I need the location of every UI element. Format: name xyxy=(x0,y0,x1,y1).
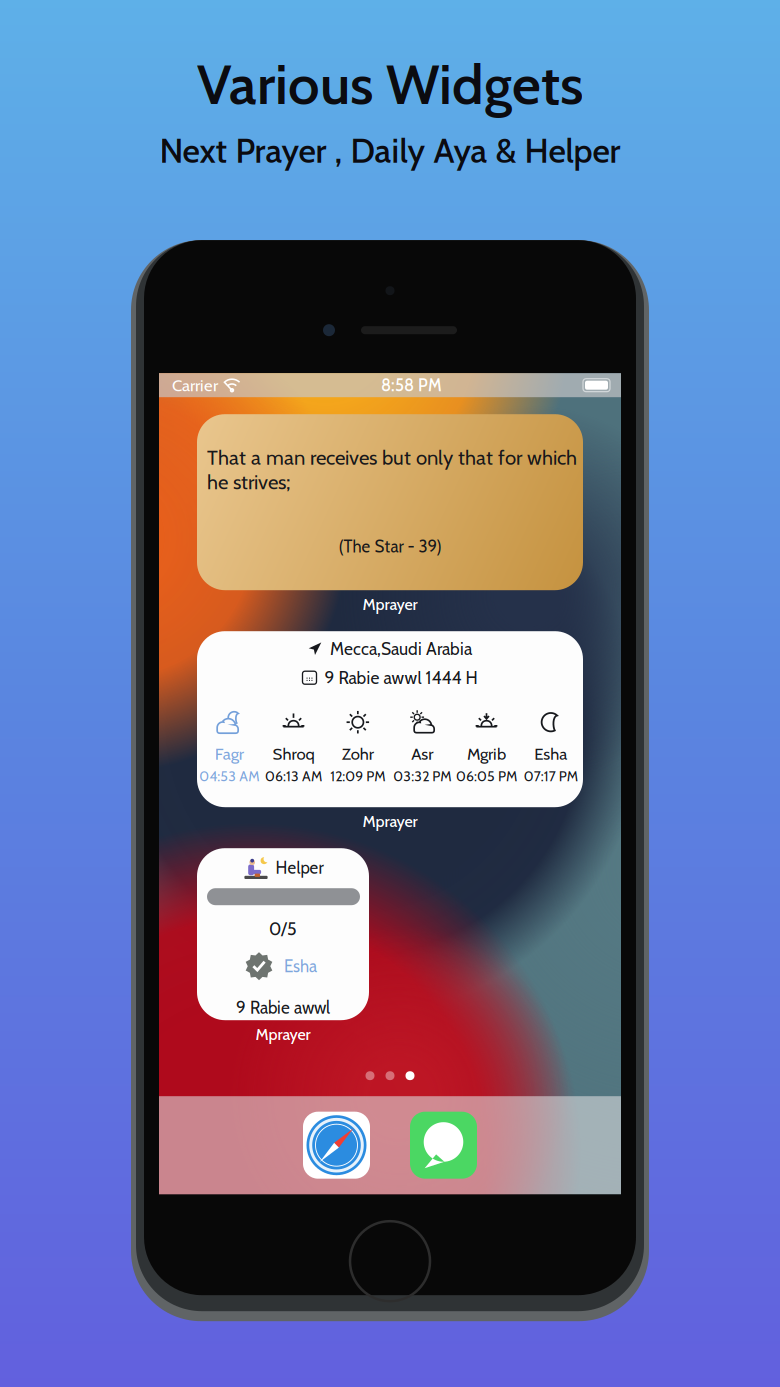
staticText: 06:05 PM xyxy=(456,768,517,785)
button[interactable]: Safari xyxy=(303,1112,370,1179)
staticText: 03:32 PM xyxy=(393,768,451,785)
staticText: 8:58 PM xyxy=(381,375,442,395)
staticText: Various Widgets xyxy=(197,50,583,118)
staticText: 06:13 AM xyxy=(265,768,322,785)
staticText: Zohr xyxy=(342,744,374,764)
staticText: Esha xyxy=(534,744,567,764)
staticText: Asr xyxy=(411,744,433,764)
staticText: 0/5 xyxy=(269,918,297,940)
staticText: That a man receives but only that for wh… xyxy=(207,445,577,494)
button[interactable]: Helper xyxy=(197,848,369,1043)
staticText: (The Star - 39) xyxy=(338,536,441,557)
staticText: Mprayer xyxy=(255,1024,310,1044)
staticText: Mprayer xyxy=(362,811,417,831)
staticText: Esha xyxy=(284,956,317,976)
staticText: Fagr xyxy=(215,744,244,764)
staticText: 9 Rabie awwl 1444 H xyxy=(324,667,477,688)
staticText: 07:17 PM xyxy=(524,768,578,785)
button[interactable]: Mecca,Saudi Arabia xyxy=(197,631,583,830)
staticText: Mecca,Saudi Arabia xyxy=(330,638,472,659)
button[interactable]: That a man receives but only that for wh… xyxy=(197,414,583,613)
button[interactable]: Messages xyxy=(410,1112,477,1179)
staticText: Next Prayer , Daily Aya & Helper xyxy=(159,130,620,171)
staticText: Mprayer xyxy=(362,594,417,614)
staticText: Shroq xyxy=(272,744,314,764)
staticText: 04:53 AM xyxy=(199,768,259,785)
staticText: Carrier xyxy=(172,375,218,395)
staticText: 9 Rabie awwl xyxy=(236,997,330,1018)
staticText: Mgrib xyxy=(467,744,506,764)
staticText: Helper xyxy=(275,857,323,878)
staticText: 12:09 PM xyxy=(330,768,385,785)
